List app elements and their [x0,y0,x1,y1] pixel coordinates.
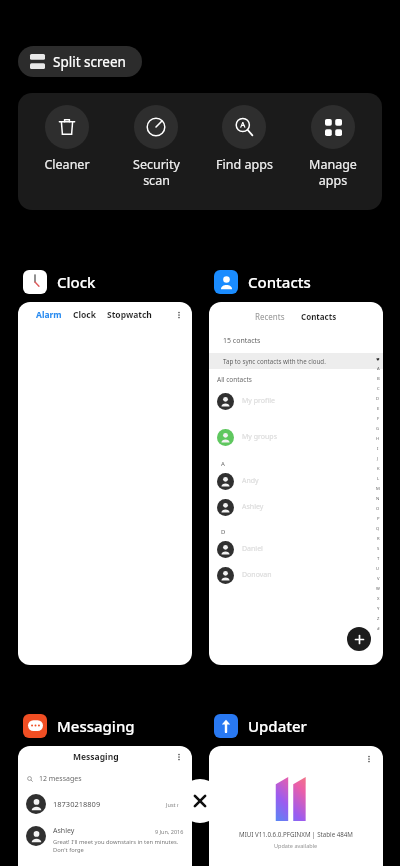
staticText: Z [377,616,380,622]
button[interactable]: Manage apps [294,105,372,188]
staticText: Update available [274,842,318,849]
button[interactable]: Cleaner [28,105,106,173]
staticText: Andy [242,476,259,486]
staticText: Ashley [53,826,75,836]
staticText: My profile [242,396,275,406]
staticText: # [377,626,380,632]
button[interactable]: Updater [213,712,307,740]
button[interactable]: Recents [209,302,383,665]
staticText: H [376,436,380,442]
staticText: G [376,426,380,432]
staticText: Contacts [301,311,337,322]
staticText: All contacts [217,375,252,384]
button[interactable]: MIUI V11.0.6.0.PFGINXM | Stable 484M [209,746,383,866]
button[interactable]: Clear all [178,779,222,823]
staticText: F [377,416,380,422]
staticText: ♥ [376,357,380,362]
staticText: O [376,506,380,512]
button[interactable]: Contacts [213,268,311,296]
staticText: E [377,406,380,412]
button[interactable]: Split screen [18,46,142,77]
staticText: Daniel [242,544,263,554]
button[interactable]: Clock [22,268,96,296]
staticText: L [377,476,380,482]
staticText: R [377,536,380,542]
staticText: Stopwatch [107,309,152,321]
button[interactable]: Messaging [18,746,192,866]
staticText: Messaging [73,751,119,763]
staticText: C [377,386,380,392]
button[interactable]: Add contact [347,627,371,651]
button[interactable]: Find apps [205,105,283,173]
staticText: Split screen [53,53,126,71]
staticText: N [376,496,380,502]
staticText: Find apps [216,156,273,173]
staticText: I [377,446,379,452]
staticText: Q [376,526,380,532]
staticText: D [376,396,380,402]
staticText: 15 contacts [223,336,261,346]
button[interactable]: Security scan [117,105,195,188]
staticText: Y [377,606,380,612]
staticText: S [377,546,380,552]
staticText: Donovan [242,570,272,580]
staticText: K [377,466,380,472]
staticText: T [377,556,380,562]
button[interactable]: Alarm [18,302,192,665]
staticText: D [221,528,226,536]
staticText: My groups [242,432,278,442]
staticText: Messaging [57,716,135,736]
staticText: 12 messages [39,774,82,784]
staticText: Great! I'll meet you downstairs in ten m… [53,838,184,854]
staticText: Manage apps [309,156,357,188]
button[interactable]: Messaging [22,712,135,740]
staticText: Security scan [133,156,180,188]
staticText: B [377,376,380,382]
staticText: Ashley [242,502,264,512]
staticText: Clock [73,309,96,321]
staticText: MIUI V11.0.6.0.PFGINXM | Stable 484M [239,830,353,838]
staticText: Contacts [248,272,311,292]
staticText: A [377,366,380,372]
staticText: P [377,516,380,522]
staticText: X [377,596,380,602]
staticText: Clock [57,272,96,292]
staticText: Updater [248,716,307,736]
staticText: 18730218809 [53,799,101,809]
staticText: Recents [255,311,285,322]
staticText: Just n.. [166,801,184,808]
staticText: Alarm [36,309,62,321]
staticText: V [377,576,380,582]
staticText: W [376,586,380,592]
staticText: J [377,456,379,462]
staticText: 9 Jun, 2016 [155,828,184,835]
staticText: U [376,566,380,572]
staticText: Cleaner [44,156,90,173]
staticText: Tap to sync contacts with the cloud. [223,357,326,365]
staticText: A [221,460,225,468]
staticText: M [376,486,380,492]
